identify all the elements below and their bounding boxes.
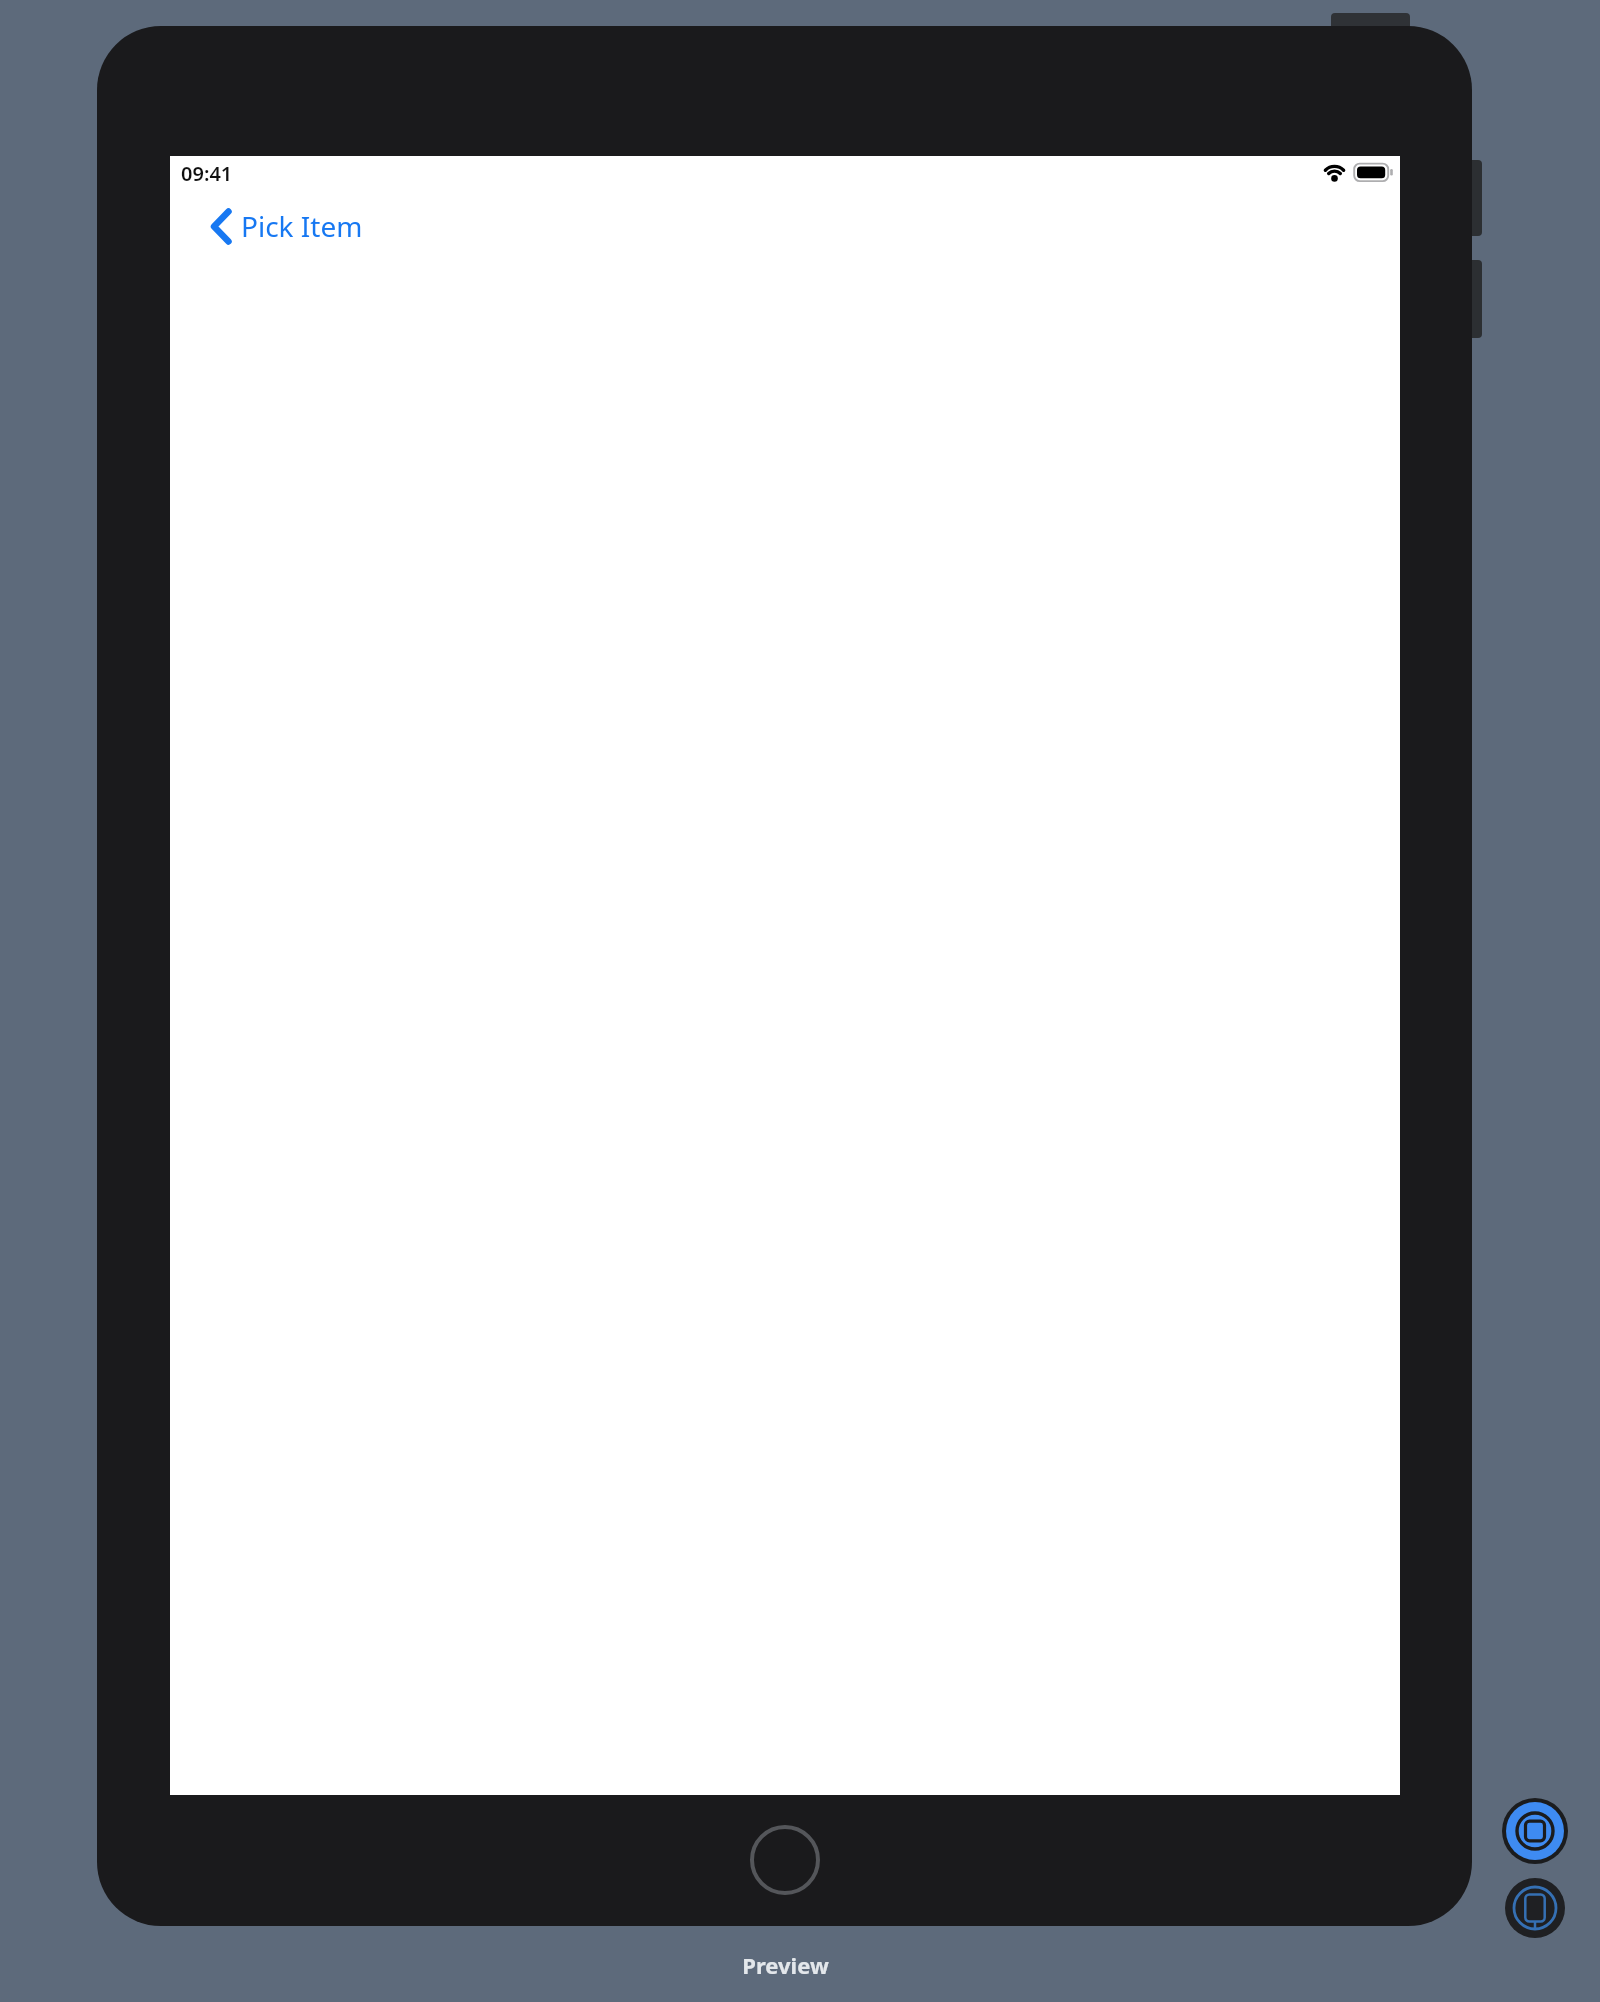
staticText: 09:41 — [181, 160, 233, 187]
button[interactable]: Pick Item — [206, 205, 367, 247]
button[interactable] — [1502, 1798, 1568, 1864]
button[interactable] — [1505, 1878, 1565, 1938]
staticText: Preview — [742, 1950, 829, 1980]
staticText: Pick Item — [241, 207, 363, 245]
